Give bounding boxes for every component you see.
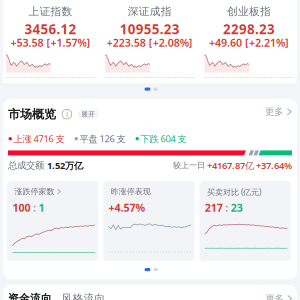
staticText: 风格流向 (61, 292, 105, 300)
button[interactable]: 资金流向 (8, 292, 52, 300)
button[interactable]: 更多 (265, 106, 292, 117)
staticText: 1.52万亿 (47, 159, 83, 172)
staticText: 展开 (81, 110, 95, 118)
staticText: 平盘 126 支 (79, 132, 125, 145)
staticText: 较上一日 (173, 160, 207, 170)
staticText: 更多 (265, 293, 283, 300)
staticText: 资金流向 (8, 292, 52, 300)
button[interactable]: 创业板指 (201, 0, 296, 83)
button[interactable]: 深证成指 (102, 0, 197, 83)
staticText: +4167.87亿 +37.64% (207, 159, 292, 172)
staticText: 涨跌停家数 (15, 187, 55, 196)
staticText: +53.58 [+1.57%] (10, 35, 90, 50)
staticText: +4.57% (109, 201, 146, 215)
staticText: 217 (205, 201, 223, 215)
staticText: 2298.23 (223, 20, 275, 38)
button[interactable]: 涨跌停家数 (7, 181, 98, 261)
staticText: 3456.12 (24, 20, 76, 38)
staticText: 买卖对比 (亿元) (207, 187, 261, 197)
staticText: 10955.23 (120, 20, 180, 38)
button[interactable]: 市场概览 (8, 107, 98, 121)
button[interactable]: 风格流向 (61, 292, 105, 300)
button[interactable]: 上证指数 (3, 0, 98, 83)
button[interactable]: 买卖对比 (亿元) (199, 181, 291, 261)
staticText: 市场概览 (8, 107, 56, 121)
staticText: 上证指数 (28, 5, 72, 18)
staticText: 深证成指 (128, 5, 172, 18)
button[interactable]: 昨涨停表现 (103, 181, 194, 261)
staticText: : (33, 201, 36, 215)
staticText: +49.60 [+2.21%] (209, 35, 289, 50)
staticText: 创业板指 (227, 5, 271, 18)
staticText: 下跌 604 支 (140, 132, 186, 145)
staticText: 上涨 4716 支 (13, 132, 64, 145)
staticText: 昨涨停表现 (111, 187, 151, 196)
staticText: : (225, 201, 228, 215)
staticText: 更多 (265, 106, 283, 117)
staticText: 23 (231, 201, 243, 215)
staticText: 1 (38, 201, 44, 215)
staticText: i (66, 109, 68, 119)
button[interactable]: 更多 (265, 293, 292, 300)
staticText: 总成交额 (8, 160, 47, 171)
staticText: 100 (12, 201, 30, 215)
staticText: +223.58 [+2.08%] (107, 35, 193, 50)
